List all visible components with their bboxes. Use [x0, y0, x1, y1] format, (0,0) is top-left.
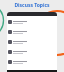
staticText: Discuss Topics [0, 2, 64, 9]
button[interactable] [7, 57, 57, 67]
button[interactable] [7, 27, 57, 37]
button[interactable] [7, 17, 57, 27]
button[interactable] [7, 37, 57, 47]
button[interactable] [7, 47, 57, 57]
